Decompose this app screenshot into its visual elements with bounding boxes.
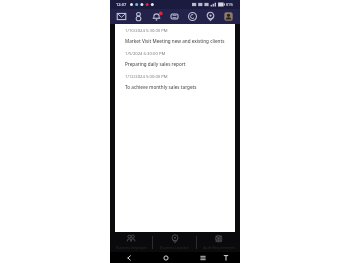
staticText: Business Employee [116,245,147,250]
button[interactable]: Contacts [130,9,147,24]
button[interactable]: 1/12/2024 5:00:00 PM [125,74,229,90]
button[interactable]: Text size [220,252,231,263]
button[interactable]: 1/5/2024 6:30:00 PM [125,51,229,67]
staticText: To achieve monthly sales targets [125,84,197,90]
staticText: 1/10/2024 5:30:00 PM [125,28,168,34]
button[interactable]: Sync [165,9,183,24]
button[interactable]: Notifications [147,9,165,24]
button[interactable]: Mail [113,9,130,24]
button[interactable]: Back [123,252,134,263]
button[interactable]: Home [160,252,171,263]
staticText: Audit Requirements [203,245,235,250]
staticText: Market Visit Meeting new and existing cl… [125,38,225,44]
staticText: Preparing daily sales report [125,61,186,67]
staticText: Business Location [160,245,189,250]
button[interactable]: 1/10/2024 5:30:00 PM [125,28,229,44]
button[interactable]: Business Employee [110,232,152,252]
button[interactable]: Location [201,9,219,24]
staticText: 81% [226,2,234,7]
staticText: 12:07 [116,2,127,7]
button[interactable]: Recents [197,252,208,263]
button[interactable]: Chat [183,9,201,24]
button[interactable]: Audit Requirements [197,232,240,252]
button[interactable]: Business Location [153,232,196,252]
button[interactable]: Profile [219,9,237,24]
staticText: 1/12/2024 5:00:00 PM [125,74,168,80]
staticText: 1/5/2024 6:30:00 PM [125,51,166,57]
